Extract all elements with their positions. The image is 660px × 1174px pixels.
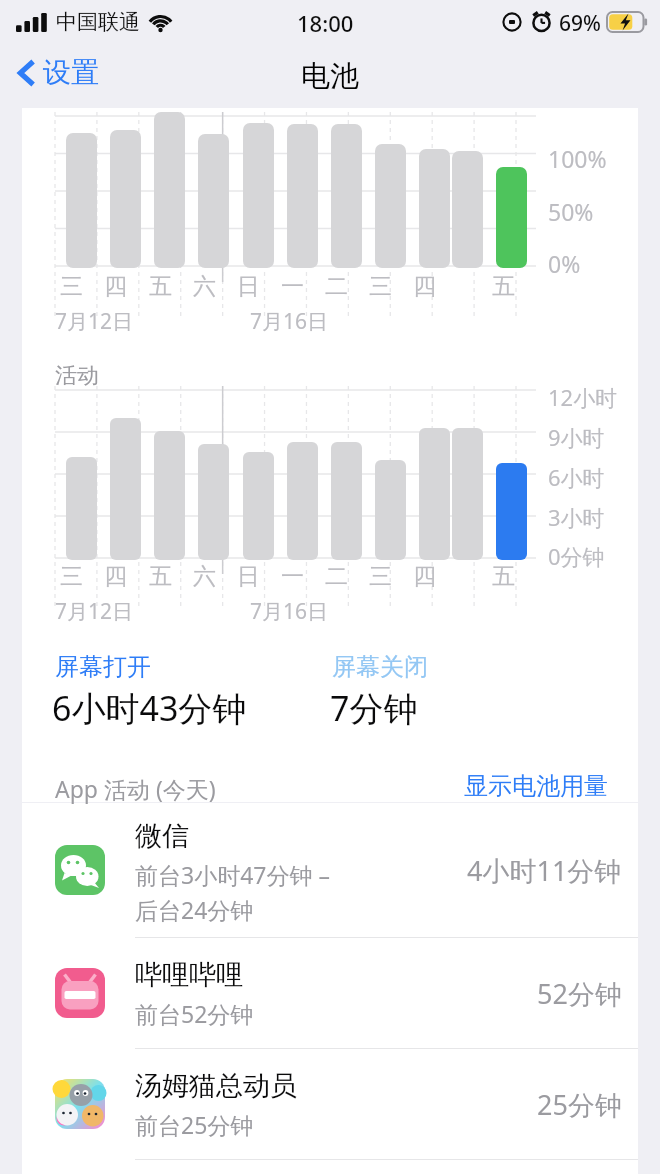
staticText: 电池: [301, 58, 359, 95]
staticText: 7分钟: [330, 685, 418, 731]
staticText: 五: [492, 272, 515, 301]
staticText: 微信: [135, 819, 189, 853]
staticText: 18:00: [297, 8, 354, 38]
staticText: 三: [60, 272, 83, 301]
staticText: 六: [193, 562, 216, 591]
staticText: 二: [325, 272, 348, 301]
staticText: 50%: [548, 196, 594, 227]
staticText: 四: [104, 272, 127, 301]
staticText: 四: [413, 562, 436, 591]
staticText: 6小时43分钟: [52, 685, 247, 731]
other: 汤姆猫总动员: [55, 1079, 105, 1129]
staticText: 四: [413, 272, 436, 301]
staticText: 25分钟: [537, 1086, 622, 1123]
staticText: 六: [193, 272, 216, 301]
staticText: 五: [492, 562, 515, 591]
staticText: 0分钟: [548, 541, 605, 571]
staticText: 6小时: [548, 462, 605, 492]
staticText: 日: [237, 562, 260, 591]
staticText: 后台24分钟: [135, 894, 254, 925]
staticText: 0%: [548, 248, 581, 279]
staticText: 三: [369, 272, 392, 301]
staticText: App 活动 (今天): [55, 773, 216, 804]
staticText: 100%: [548, 143, 607, 174]
staticText: 屏幕关闭: [332, 652, 428, 682]
staticText: 4小时11分钟: [467, 852, 622, 889]
button[interactable]: 显示电池用量: [458, 765, 614, 807]
staticText: 前台3小时47分钟 –: [135, 859, 330, 890]
staticText: 汤姆猫总动员: [135, 1069, 297, 1103]
staticText: 9小时: [548, 422, 605, 452]
button[interactable]: 哔哩哔哩: [22, 938, 638, 1048]
staticText: 7月12日: [55, 597, 134, 626]
staticText: 12小时: [548, 382, 618, 412]
staticText: 7月16日: [250, 597, 329, 626]
staticText: 五: [149, 562, 172, 591]
other: 微信: [55, 845, 105, 895]
button[interactable]: 设置: [12, 50, 105, 95]
staticText: 3小时: [548, 502, 605, 532]
staticText: 屏幕打开: [55, 652, 151, 682]
staticText: 中国联通: [56, 9, 140, 35]
staticText: 活动: [55, 362, 99, 390]
staticText: 52分钟: [537, 975, 622, 1012]
button[interactable]: 微信: [22, 803, 638, 937]
staticText: 四: [104, 562, 127, 591]
staticText: 显示电池用量: [464, 771, 608, 801]
staticText: 哔哩哔哩: [135, 958, 243, 992]
staticText: 三: [369, 562, 392, 591]
staticText: 日: [237, 272, 260, 301]
staticText: 前台52分钟: [135, 998, 254, 1029]
staticText: 69%: [559, 9, 601, 38]
other: 哔哩哔哩: [55, 968, 105, 1018]
staticText: 7月16日: [250, 307, 329, 336]
staticText: 一: [281, 272, 304, 301]
staticText: 一: [281, 562, 304, 591]
staticText: 7月12日: [55, 307, 134, 336]
button[interactable]: 汤姆猫总动员: [22, 1049, 638, 1159]
staticText: 设置: [43, 55, 99, 90]
staticText: 二: [325, 562, 348, 591]
staticText: 三: [60, 562, 83, 591]
staticText: 前台25分钟: [135, 1109, 254, 1140]
staticText: 五: [149, 272, 172, 301]
